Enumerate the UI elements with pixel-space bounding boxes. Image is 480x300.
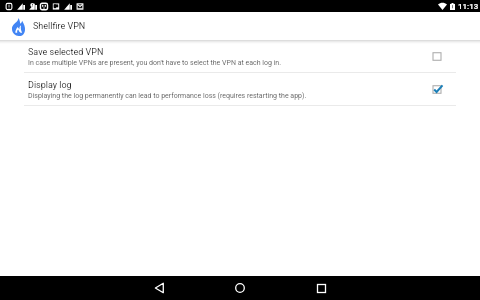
button[interactable]: Display log: [429, 81, 445, 97]
button[interactable]: Back: [147, 276, 171, 300]
staticText: Shellfire VPN: [33, 21, 86, 32]
staticText: Display log: [28, 80, 72, 91]
staticText: In case multiple VPNs are present, you d…: [28, 59, 282, 67]
button[interactable]: Save selected VPN: [429, 48, 445, 64]
staticText: Displaying the log permanently can lead …: [28, 92, 307, 100]
button[interactable]: Home: [228, 276, 252, 300]
staticText: Save selected VPN: [28, 47, 104, 58]
button[interactable]: Shellfire VPN: [0, 12, 96, 40]
staticText: 11:13: [458, 2, 479, 11]
button[interactable]: Save selected VPN: [0, 40, 480, 73]
button[interactable]: Display log: [0, 73, 480, 106]
button[interactable]: Recent apps: [309, 276, 333, 300]
